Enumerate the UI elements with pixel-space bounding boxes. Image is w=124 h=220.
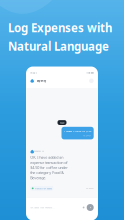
button[interactable]: Profile <box>89 78 94 83</box>
button[interactable]: Transaction added <box>30 186 53 191</box>
staticText: I bought a coffee for $4.50 <box>64 129 91 133</box>
button[interactable]: Ask about your finances... <box>30 206 80 209</box>
staticText: 10:24 AM <box>86 187 94 190</box>
button[interactable]: Attach <box>81 206 85 209</box>
staticText: Natural Language <box>8 39 109 54</box>
staticText: Expensy <box>37 79 46 83</box>
staticText: Today <box>59 121 64 124</box>
staticText: 9:41 <box>30 71 37 75</box>
staticText: OK. I have added an expense transaction … <box>30 155 68 180</box>
button[interactable]: Send <box>87 204 94 211</box>
staticText: 10:24 AM <box>83 134 91 137</box>
staticText: Log Expenses with <box>8 20 112 36</box>
staticText: Expensy AI <box>34 149 44 152</box>
staticText: Ask about your finances... <box>30 206 55 209</box>
button[interactable]: Expensy home <box>30 79 34 83</box>
staticText: Transaction added <box>35 187 52 190</box>
